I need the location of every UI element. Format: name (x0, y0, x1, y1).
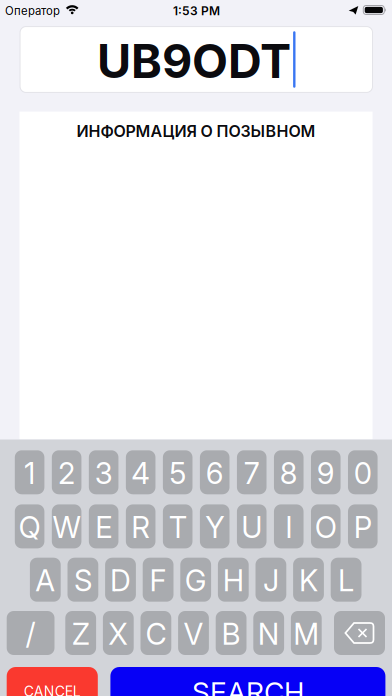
button[interactable]: SEARCH (110, 667, 385, 696)
staticText: R (131, 510, 150, 545)
button[interactable]: T (163, 504, 192, 548)
button[interactable]: N (253, 611, 284, 655)
staticText: ИНФОРМАЦИЯ О ПОЗЫВНОМ (76, 122, 315, 141)
button[interactable]: 6 (200, 450, 229, 494)
staticText: 1:53 PM (173, 4, 220, 18)
staticText: UB9ODT (97, 33, 291, 89)
button[interactable]: Y (200, 504, 229, 548)
button[interactable]: Callsign field (20, 26, 373, 92)
button[interactable]: 2 (52, 450, 81, 494)
button[interactable]: H (218, 558, 249, 602)
button[interactable]: W (52, 504, 81, 548)
button[interactable]: J (255, 558, 286, 602)
button[interactable]: X (103, 611, 134, 655)
staticText: 7 (244, 456, 260, 491)
staticText: U (241, 510, 262, 545)
staticText: P (354, 510, 372, 545)
button[interactable]: F (143, 558, 173, 602)
button[interactable]: M (291, 611, 322, 655)
staticText: J (263, 563, 279, 598)
staticText: I (285, 510, 292, 545)
button[interactable]: K (293, 558, 324, 602)
staticText: Q (19, 510, 41, 545)
button[interactable]: 0 (348, 450, 378, 494)
button[interactable]: L (331, 558, 361, 602)
button[interactable]: 8 (274, 450, 303, 494)
button[interactable]: S (67, 558, 98, 602)
button[interactable]: E (89, 504, 118, 548)
staticText: E (95, 510, 112, 545)
button[interactable]: 7 (237, 450, 266, 494)
staticText: S (74, 563, 92, 598)
staticText: A (35, 563, 55, 598)
button[interactable]: G (180, 558, 211, 602)
staticText: Y (205, 510, 224, 545)
staticText: / (26, 616, 36, 652)
button[interactable]: C (140, 611, 171, 655)
button[interactable]: 4 (126, 450, 155, 494)
staticText: D (110, 563, 131, 598)
staticText: B (222, 616, 241, 652)
staticText: L (338, 563, 354, 598)
button[interactable]: V (178, 611, 209, 655)
button[interactable]: CANCEL (7, 667, 98, 696)
button[interactable]: I (274, 504, 303, 548)
staticText: 1 (24, 456, 35, 491)
staticText: CANCEL (24, 683, 81, 696)
button[interactable]: 1 (15, 450, 44, 494)
button[interactable]: B (216, 611, 246, 655)
staticText: SEARCH (192, 675, 304, 696)
button[interactable]: Z (65, 611, 96, 655)
button[interactable]: 9 (311, 450, 341, 494)
staticText: 9 (317, 456, 335, 491)
button[interactable]: U (237, 504, 266, 548)
staticText: T (169, 510, 187, 545)
staticText: V (183, 616, 203, 652)
staticText: 3 (95, 456, 113, 491)
button[interactable]: Delete (334, 611, 385, 655)
staticText: K (299, 563, 318, 598)
staticText: 4 (131, 456, 150, 491)
staticText: W (53, 510, 81, 545)
staticText: 5 (169, 456, 186, 491)
staticText: 6 (206, 456, 224, 491)
staticText: 8 (280, 456, 298, 491)
button[interactable]: D (105, 558, 136, 602)
staticText: H (223, 563, 244, 598)
staticText: N (258, 616, 280, 652)
staticText: G (185, 563, 207, 598)
staticText: C (145, 616, 166, 652)
button[interactable]: O (311, 504, 341, 548)
staticText: Z (72, 616, 90, 652)
staticText: M (293, 616, 319, 652)
staticText: O (315, 510, 337, 545)
button[interactable]: 5 (163, 450, 192, 494)
staticText: X (108, 616, 128, 652)
staticText: 2 (58, 456, 75, 491)
button[interactable]: R (126, 504, 155, 548)
staticText: Оператор (5, 4, 60, 18)
button[interactable]: A (30, 558, 61, 602)
button[interactable]: P (348, 504, 378, 548)
staticText: 0 (354, 456, 372, 491)
staticText: F (150, 563, 167, 598)
button[interactable]: 3 (89, 450, 118, 494)
button[interactable]: Q (15, 504, 44, 548)
button[interactable]: / (7, 611, 54, 655)
